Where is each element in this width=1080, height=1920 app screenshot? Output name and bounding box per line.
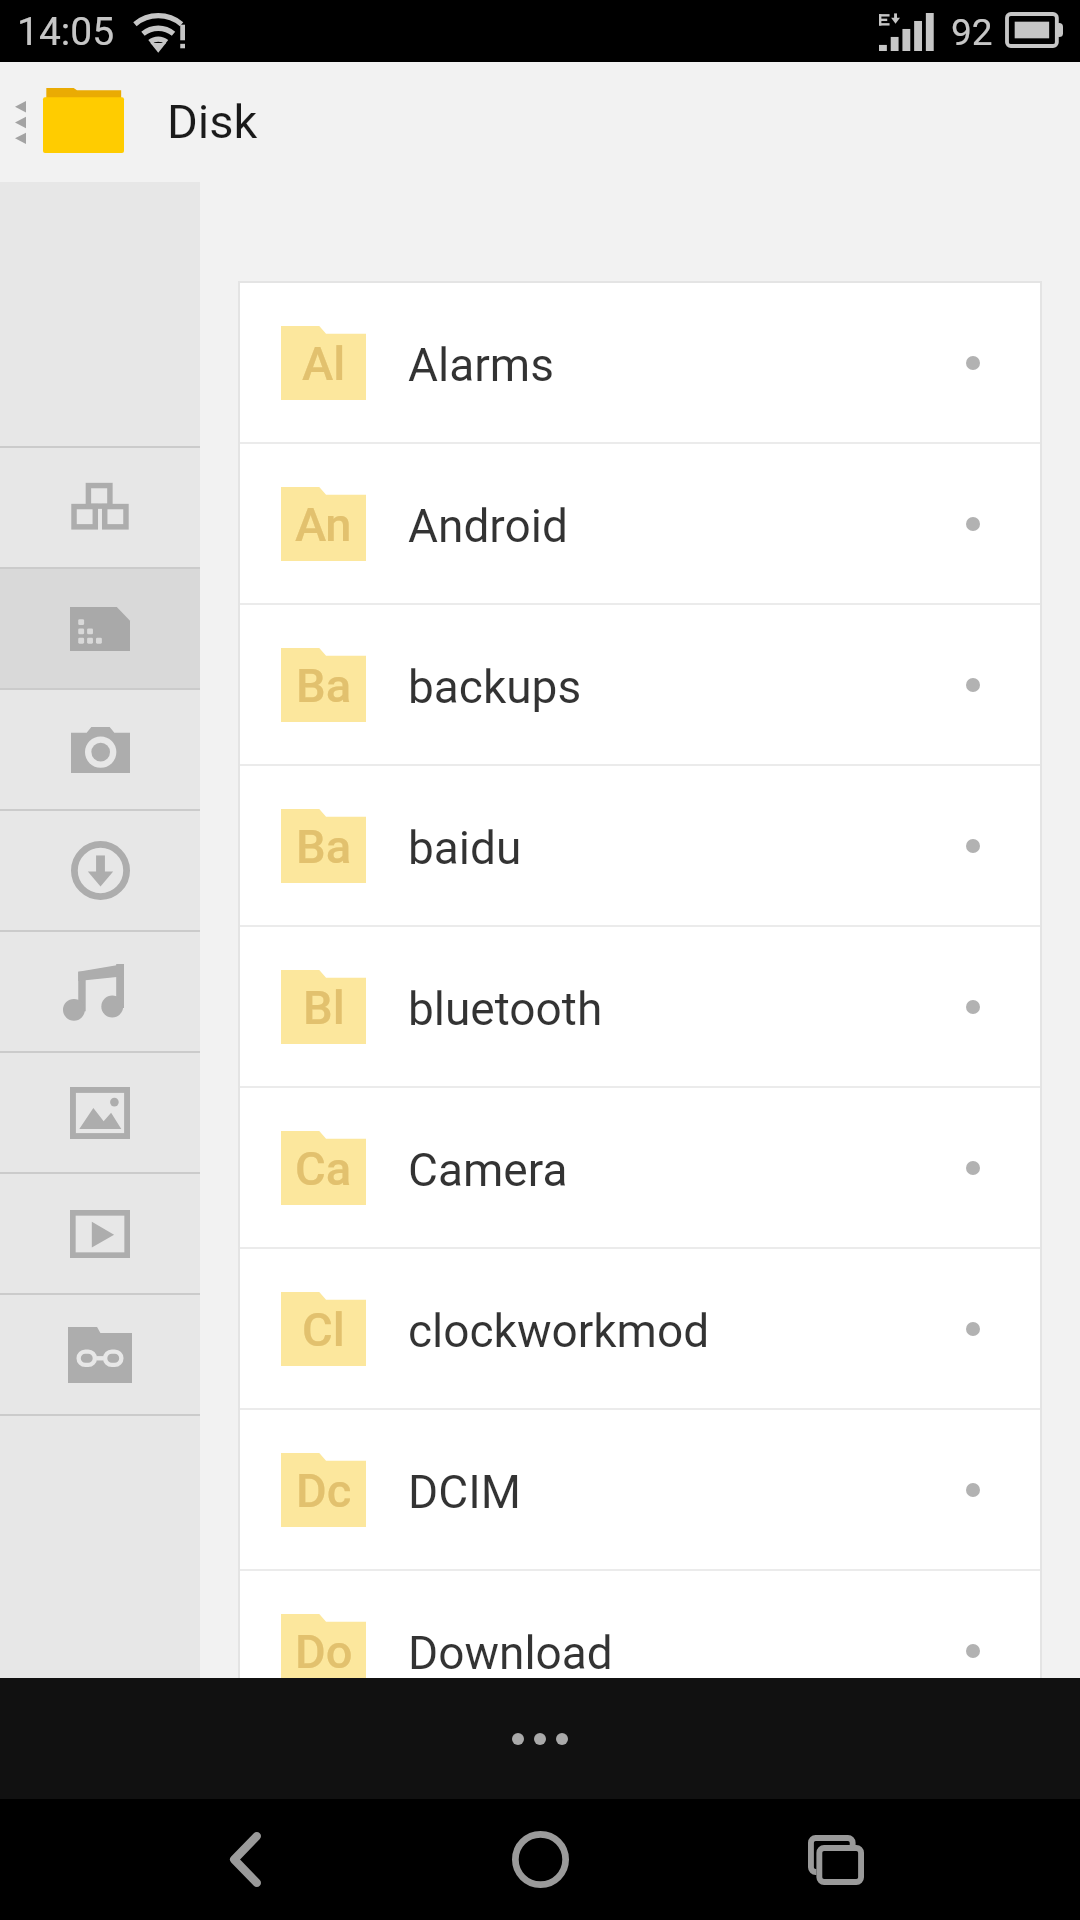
button[interactable]: Apps xyxy=(0,448,200,567)
button[interactable]: Cl xyxy=(240,1249,1040,1408)
button[interactable]: Hidden xyxy=(0,1295,200,1414)
button[interactable]: Home xyxy=(475,1799,605,1920)
button[interactable]: SD card xyxy=(0,569,200,688)
staticText: DCIM xyxy=(408,1465,521,1519)
staticText: Ba xyxy=(296,658,352,713)
button[interactable]: Ca xyxy=(240,1088,1040,1247)
staticText: 14:05 xyxy=(17,9,115,55)
button[interactable]: Ba xyxy=(240,766,1040,925)
button[interactable]: Dc xyxy=(240,1410,1040,1569)
staticText: Cl xyxy=(302,1302,345,1357)
staticText: Dc xyxy=(296,1463,352,1518)
button[interactable]: Videos xyxy=(0,1174,200,1293)
button[interactable]: Camera xyxy=(0,690,200,809)
button[interactable]: Disk xyxy=(0,62,1080,182)
staticText: Ba xyxy=(296,819,352,874)
button[interactable]: More options xyxy=(0,1678,1080,1799)
staticText: baidu xyxy=(408,821,522,875)
staticText: Do xyxy=(295,1624,353,1678)
staticText: An xyxy=(295,497,352,552)
staticText: Alarms xyxy=(408,338,554,392)
button[interactable]: Do xyxy=(240,1571,1040,1678)
button[interactable]: Bl xyxy=(240,927,1040,1086)
staticText: 92 xyxy=(951,11,993,54)
button[interactable]: Downloads xyxy=(0,811,200,930)
button[interactable]: Al xyxy=(240,283,1040,442)
staticText: clockworkmod xyxy=(408,1304,710,1358)
staticText: Ca xyxy=(295,1141,352,1196)
staticText: Download xyxy=(408,1626,613,1678)
button[interactable]: Ba xyxy=(240,605,1040,764)
button[interactable]: Music xyxy=(0,932,200,1051)
button[interactable]: Pictures xyxy=(0,1053,200,1172)
staticText: Disk xyxy=(167,94,258,149)
staticText: Bl xyxy=(303,980,345,1035)
button[interactable]: An xyxy=(240,444,1040,603)
staticText: backups xyxy=(408,660,582,714)
staticText: Android xyxy=(408,499,568,553)
staticText: Al xyxy=(302,336,346,391)
button[interactable]: Back xyxy=(180,1799,310,1920)
button[interactable]: Recents xyxy=(771,1799,901,1920)
staticText: Camera xyxy=(408,1143,568,1197)
staticText: bluetooth xyxy=(408,982,603,1036)
